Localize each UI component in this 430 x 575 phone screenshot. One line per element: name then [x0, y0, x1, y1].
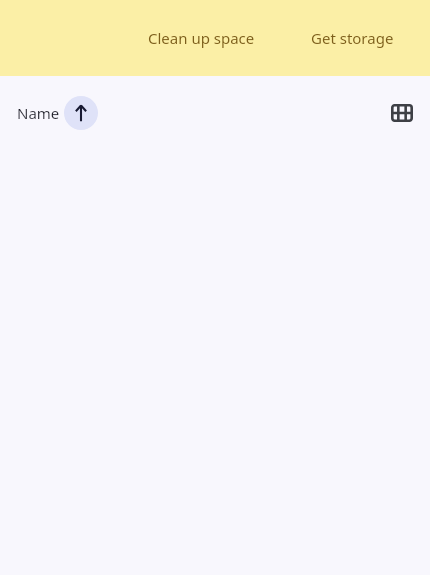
staticText: Name — [17, 103, 60, 123]
button[interactable]: Clean up space — [132, 20, 271, 56]
button[interactable]: Get storage — [295, 20, 410, 56]
staticText: Clean up space — [148, 28, 255, 48]
staticText: Get storage — [311, 28, 394, 48]
button[interactable]: Switch to grid view — [382, 93, 422, 133]
button[interactable]: Name — [11, 94, 100, 132]
other: Sort ascending — [72, 104, 90, 122]
